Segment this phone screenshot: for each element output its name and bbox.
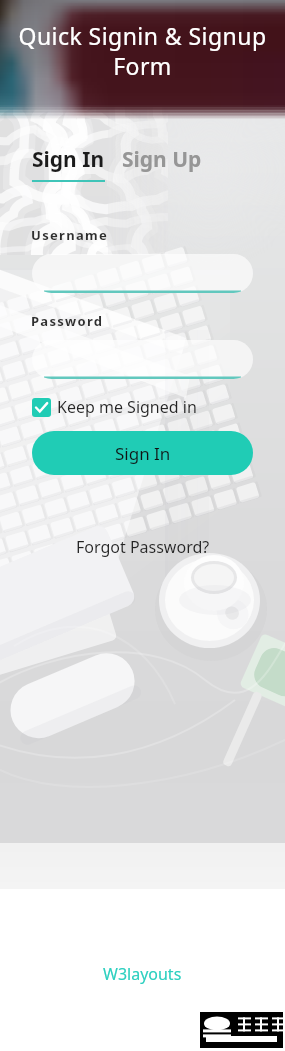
button[interactable]: Sign In [32,145,105,182]
staticText: Keep me Signed in [57,396,197,418]
button[interactable]: W3layouts [103,963,182,985]
button[interactable]: Sign In [32,431,253,475]
staticText: Sign In [115,442,171,465]
staticText: Password [31,312,104,330]
button[interactable] [32,340,253,379]
other: Mobanwang watermark [200,1012,283,1048]
staticText: Username [31,226,108,244]
staticText: Quick Signin & Signup Form [18,20,267,82]
button[interactable]: Forgot Password? [76,536,210,558]
button[interactable]: Sign Up [122,145,202,174]
staticText: Sign In [32,145,105,174]
button[interactable]: Keep me Signed in [32,396,197,418]
button[interactable] [32,254,253,293]
